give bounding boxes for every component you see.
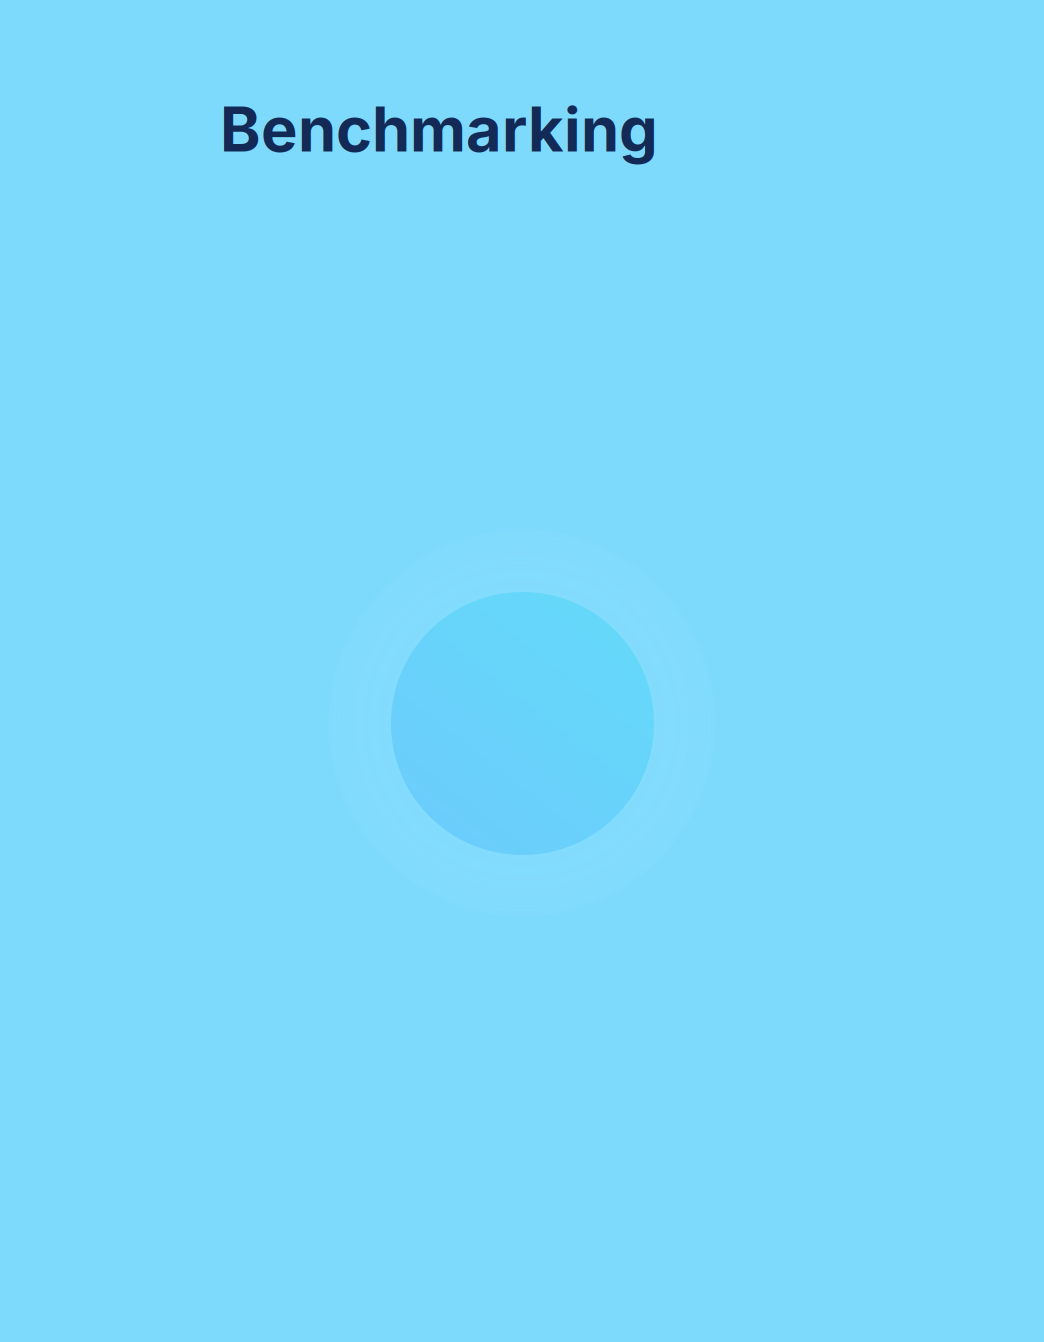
staticText: Benchmarking [220, 92, 658, 166]
